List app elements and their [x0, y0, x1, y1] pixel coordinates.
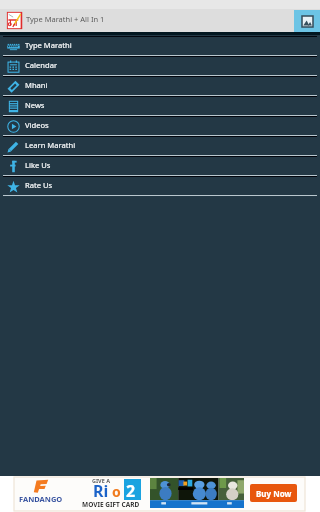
button[interactable]: Like Us — [0, 156, 320, 176]
staticText: 2 — [126, 480, 136, 502]
button[interactable]: Calendar — [0, 56, 320, 76]
button[interactable]: Videos — [0, 116, 320, 136]
staticText: Calendar — [25, 60, 58, 70]
button[interactable]: News — [0, 96, 320, 116]
button[interactable]: Image — [294, 10, 320, 32]
staticText: MOVIE GIFT CARD — [82, 500, 140, 509]
staticText: Like Us — [25, 160, 51, 170]
button[interactable]: Type Marathi — [0, 36, 320, 56]
staticText: FANDANGO — [19, 494, 63, 504]
button[interactable]: Buy Now — [250, 484, 297, 502]
staticText: Learn Marathi — [25, 140, 76, 150]
staticText: Buy Now — [256, 488, 292, 499]
staticText: Mhani — [25, 80, 48, 90]
staticText: Ri — [93, 480, 109, 502]
button[interactable]: Mhani — [0, 76, 320, 96]
staticText: Type Marathi — [25, 40, 72, 50]
button[interactable]: Learn Marathi — [0, 136, 320, 156]
staticText: GIVE A — [92, 477, 111, 484]
button[interactable]: Rate Us — [0, 176, 320, 196]
staticText: Videos — [25, 120, 49, 130]
button[interactable]: FANDANGO — [0, 476, 320, 512]
staticText: News — [25, 100, 45, 110]
staticText: Type Marathi + All In 1 — [26, 14, 105, 24]
staticText: Rate Us — [25, 180, 53, 190]
staticText: o — [112, 482, 121, 501]
